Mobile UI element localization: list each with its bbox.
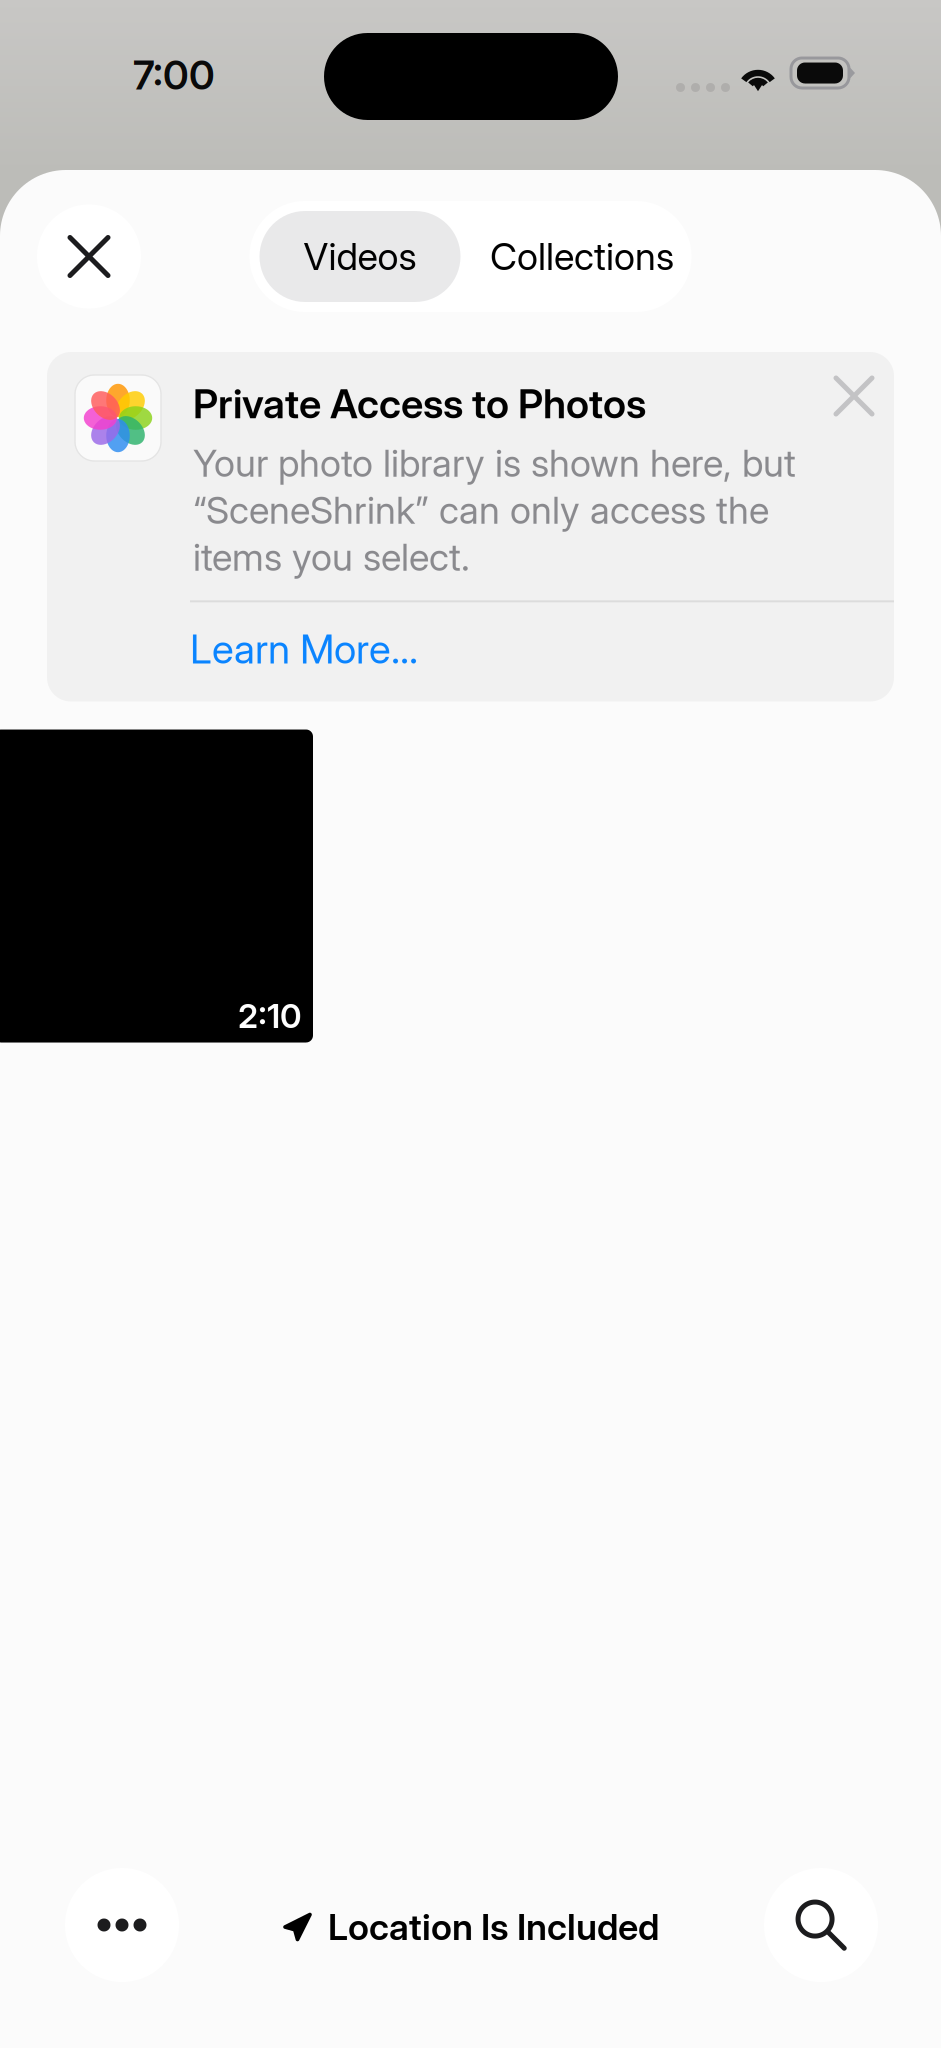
- button[interactable]: Collections: [460, 211, 681, 302]
- staticText: Videos: [303, 234, 416, 278]
- staticText: Collections: [490, 234, 674, 278]
- staticText: 7:00: [133, 51, 215, 99]
- staticText: Location Is Included: [328, 1906, 659, 1948]
- button[interactable]: More options: [65, 1868, 179, 1982]
- button[interactable]: Videos: [259, 211, 460, 302]
- button[interactable]: Close: [37, 204, 141, 308]
- staticText: Learn More...: [190, 625, 418, 672]
- button[interactable]: Search: [764, 1868, 878, 1982]
- staticText: Your photo library is shown here, but “S…: [193, 441, 796, 579]
- staticText: 2:10: [238, 996, 302, 1035]
- button[interactable]: Dismiss: [822, 352, 894, 428]
- staticText: Private Access to Photos: [193, 380, 646, 427]
- button[interactable]: Learn More...: [47, 602, 894, 701]
